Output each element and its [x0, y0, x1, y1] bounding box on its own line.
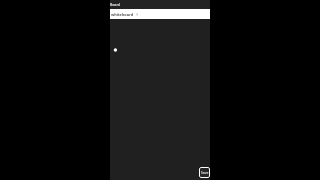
button[interactable]: whiteboard — [110, 9, 210, 19]
staticText: whiteboard — [111, 12, 134, 17]
button[interactable]: Save board — [199, 167, 210, 178]
staticText: Board — [110, 2, 120, 7]
staticText: Save — [201, 170, 209, 175]
staticText: ▾ — [136, 12, 139, 17]
